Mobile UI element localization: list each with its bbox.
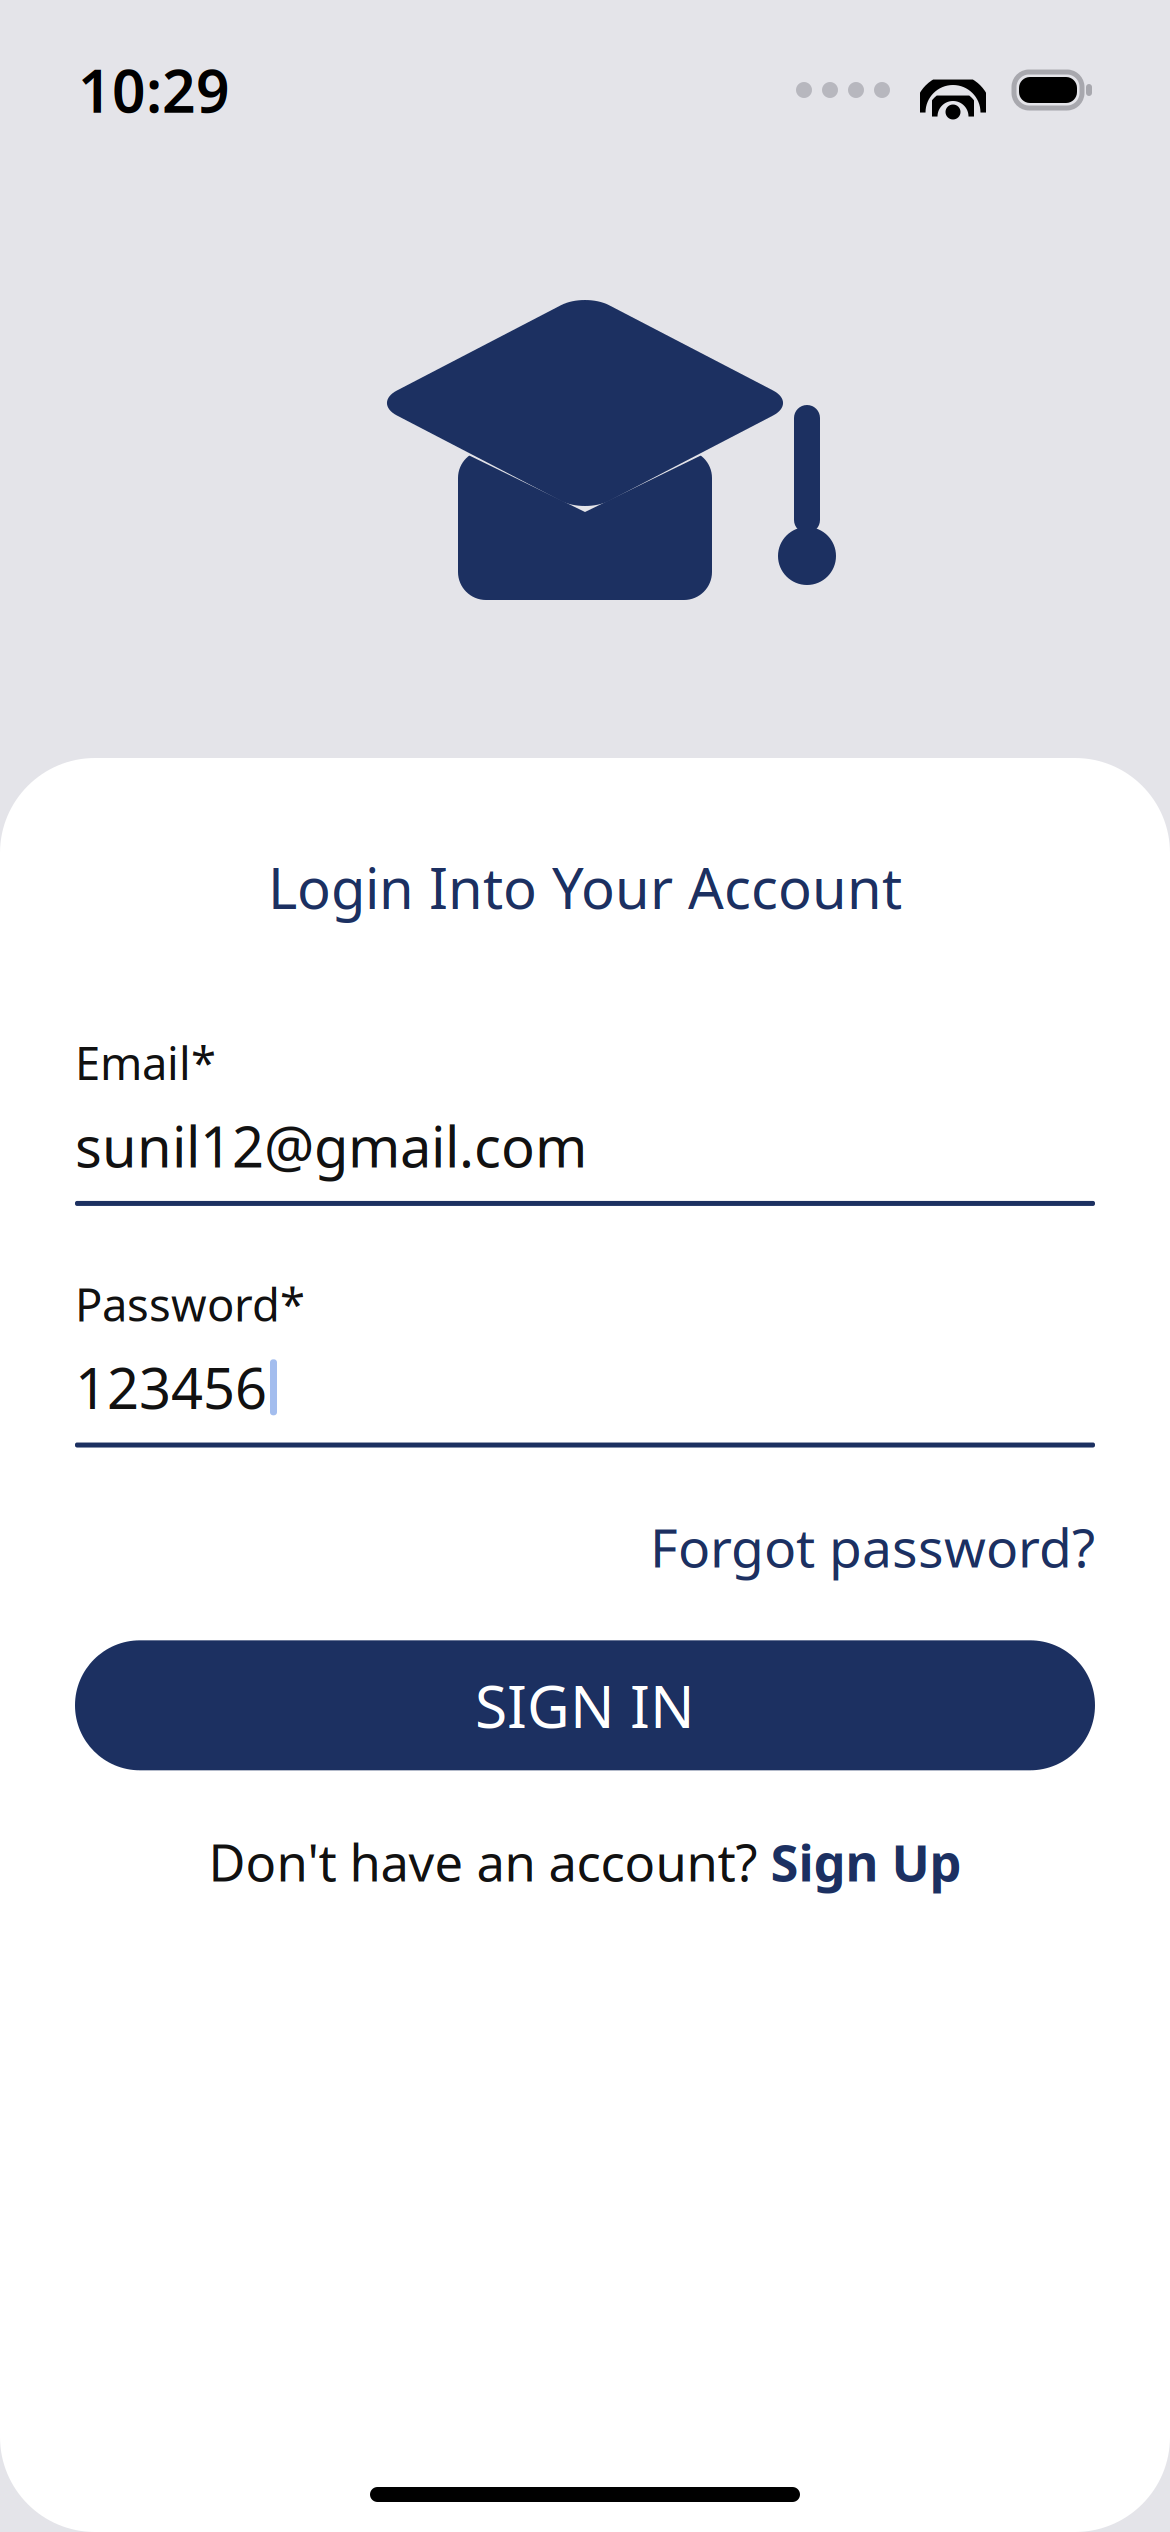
staticText: Sign Up <box>770 1828 961 1896</box>
staticText: Login Into Your Account <box>268 850 902 924</box>
button[interactable]: SIGN IN <box>75 1640 1095 1770</box>
staticText: Forgot password? <box>650 1511 1095 1582</box>
button[interactable]: Forgot password? <box>650 1499 1095 1594</box>
staticText: Email* <box>75 1032 216 1093</box>
staticText: Password* <box>75 1274 305 1334</box>
staticText: sunil12@gmail.com <box>75 1109 587 1183</box>
staticText: SIGN IN <box>475 1666 695 1744</box>
button[interactable]: Don't have an account? <box>208 1814 961 1910</box>
staticText: 10:29 <box>78 51 230 129</box>
staticText: 123456 <box>75 1350 267 1424</box>
staticText: Don't have an account? <box>208 1828 770 1896</box>
